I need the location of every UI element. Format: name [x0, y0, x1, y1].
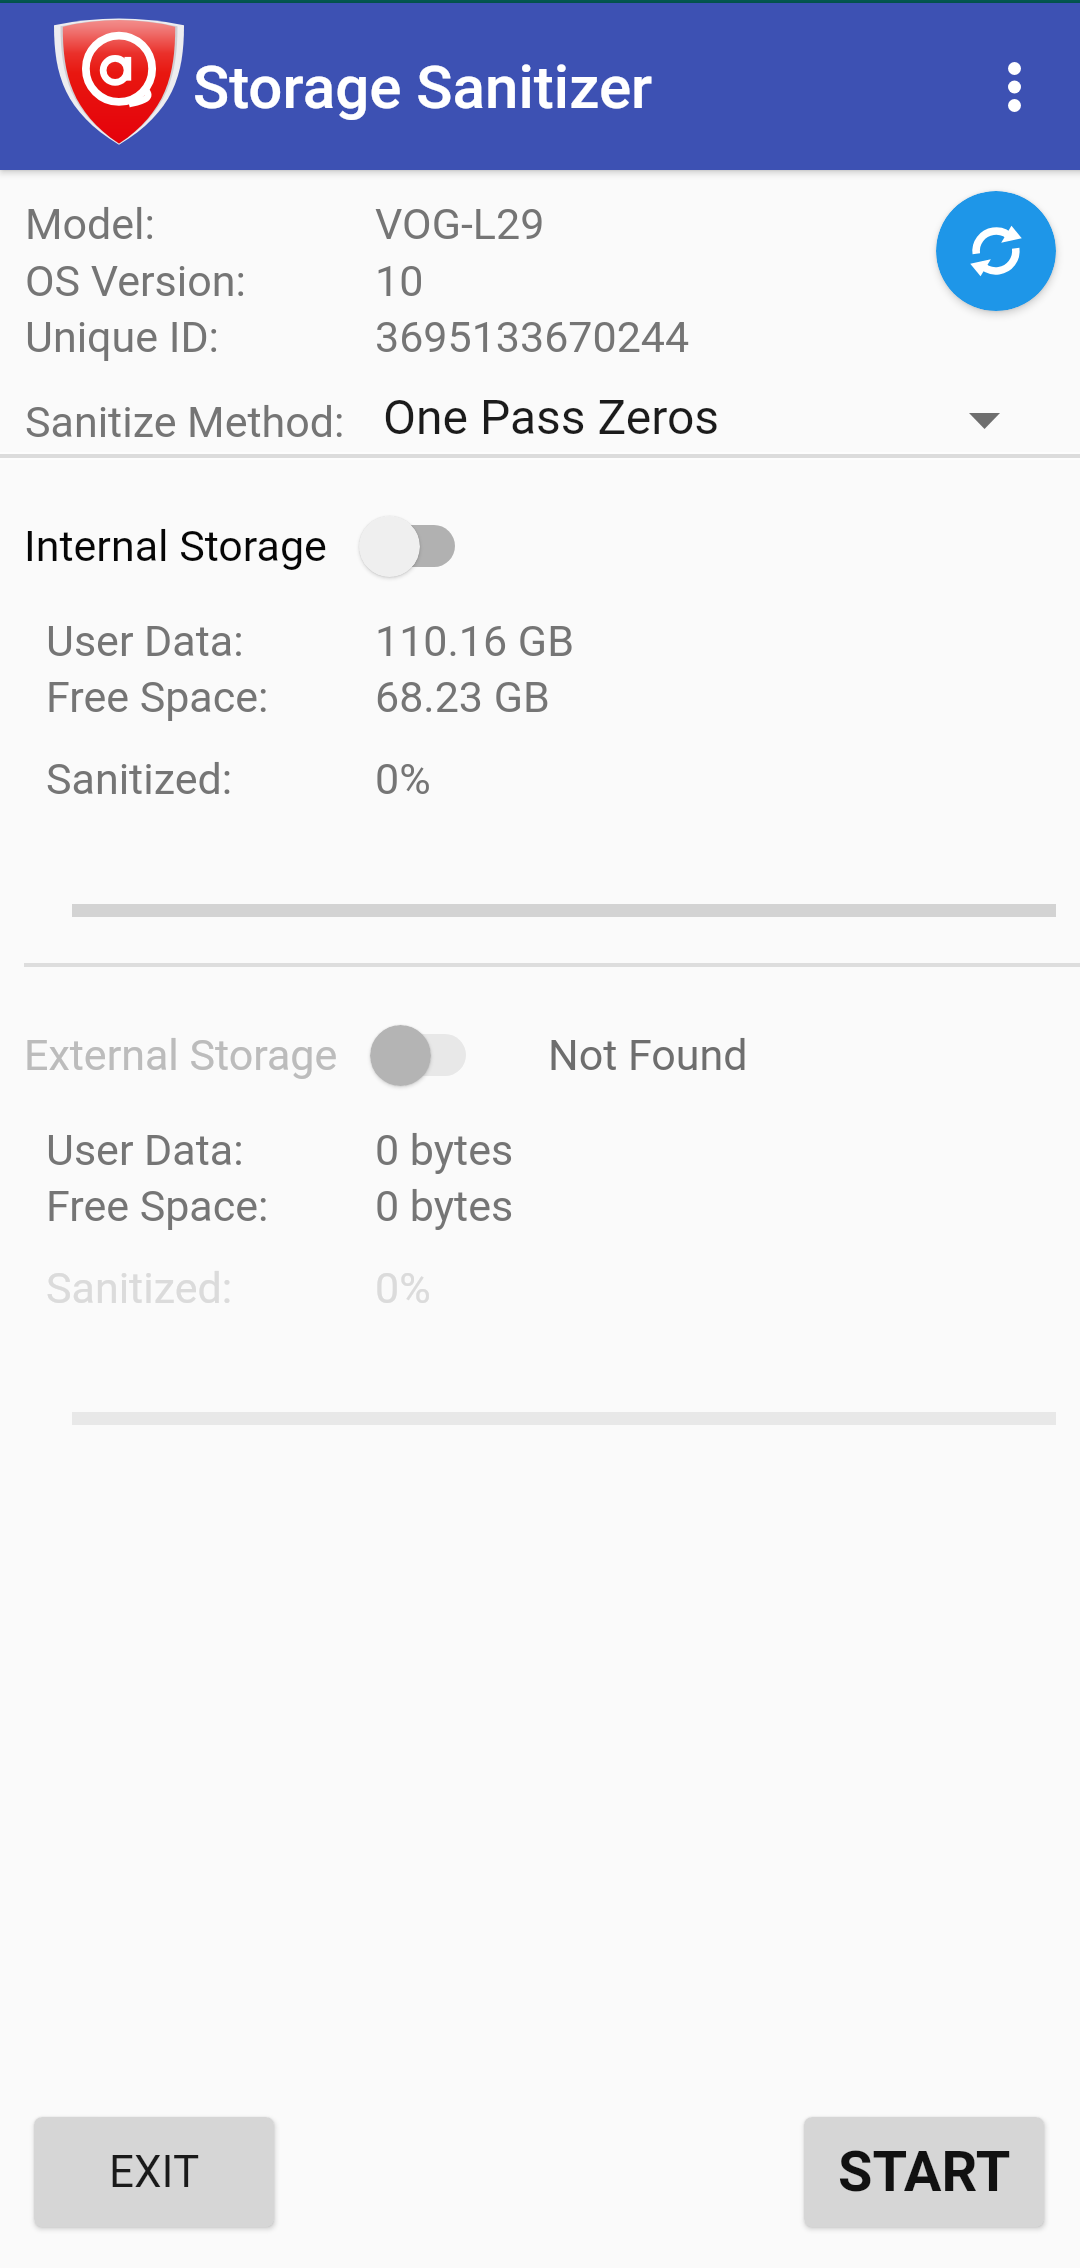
button[interactable]: Internal Storage toggle	[339, 501, 475, 591]
staticText: One Pass Zeros	[383, 389, 720, 445]
staticText: User Data:	[46, 1125, 244, 1175]
staticText: 0%	[375, 1263, 431, 1313]
staticText: EXIT	[109, 2146, 200, 2198]
staticText: 3695133670244	[375, 312, 690, 362]
staticText: External Storage	[24, 1030, 338, 1080]
staticText: 0 bytes	[375, 1181, 514, 1231]
staticText: START	[838, 2139, 1011, 2205]
staticText: Sanitize Method:	[25, 397, 345, 447]
staticText: Sanitized:	[46, 1263, 233, 1313]
staticText: Free Space:	[46, 1181, 269, 1231]
staticText: 110.16 GB	[375, 616, 574, 666]
staticText: 68.23 GB	[375, 672, 550, 722]
staticText: 0%	[375, 754, 431, 804]
staticText: Internal Storage	[24, 521, 327, 571]
staticText: Storage Sanitizer	[193, 52, 653, 122]
button[interactable]: More options	[964, 3, 1064, 169]
button[interactable]: START	[804, 2117, 1044, 2227]
staticText: OS Version:	[25, 256, 246, 306]
staticText: Sanitized:	[46, 754, 233, 804]
staticText: 0 bytes	[375, 1125, 514, 1175]
staticText: Model:	[25, 199, 155, 249]
button[interactable]: Refresh	[936, 191, 1056, 311]
staticText: User Data:	[46, 616, 244, 666]
button[interactable]: External Storage toggle	[350, 1010, 486, 1100]
staticText: VOG-L29	[375, 199, 545, 249]
button[interactable]: EXIT	[34, 2117, 274, 2227]
staticText: Free Space:	[46, 672, 269, 722]
staticText: Unique ID:	[25, 312, 220, 362]
button[interactable]: Sanitize Method:	[0, 390, 1080, 454]
staticText: Not Found	[548, 1030, 748, 1080]
staticText: 10	[375, 256, 424, 306]
